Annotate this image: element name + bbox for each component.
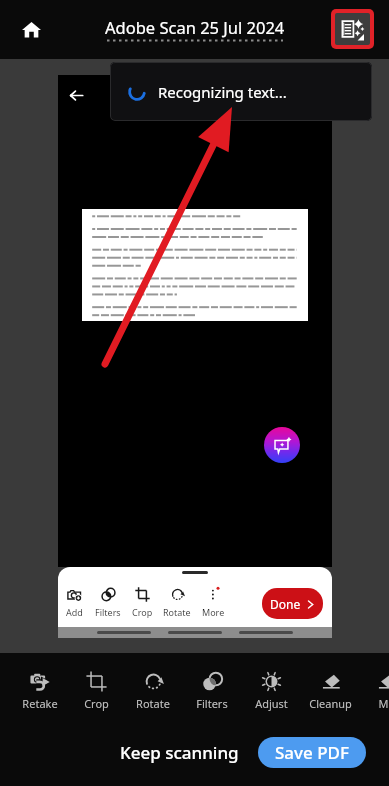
button[interactable]: Rotate bbox=[125, 666, 181, 714]
button[interactable]: Add bbox=[58, 582, 91, 622]
staticText: Cleanup bbox=[309, 696, 352, 711]
button[interactable]: Filters bbox=[91, 582, 125, 622]
staticText: Ma bbox=[378, 696, 389, 711]
button[interactable]: AI Assistant bbox=[264, 427, 300, 463]
button[interactable]: Cleanup bbox=[302, 666, 358, 714]
staticText: Crop bbox=[84, 696, 109, 711]
staticText: Rotate bbox=[163, 606, 191, 618]
button[interactable]: Keep scanning bbox=[120, 738, 239, 766]
staticText: Adjust bbox=[255, 696, 288, 711]
button[interactable]: More bbox=[196, 582, 230, 622]
staticText: More bbox=[202, 606, 225, 618]
button[interactable]: Retake bbox=[12, 666, 68, 714]
button[interactable]: Filters bbox=[184, 666, 240, 714]
staticText: Retake bbox=[22, 696, 58, 711]
button[interactable]: Crop bbox=[125, 582, 159, 622]
staticText: Adobe Scan 25 Jul 2024 bbox=[105, 16, 285, 38]
staticText: Filters bbox=[95, 606, 121, 618]
button[interactable]: Rotate bbox=[160, 582, 194, 622]
button[interactable]: Back bbox=[60, 79, 92, 111]
staticText: Crop bbox=[132, 606, 153, 618]
button[interactable]: Done bbox=[262, 588, 323, 619]
staticText: Keep scanning bbox=[120, 741, 239, 764]
button[interactable]: Adjust bbox=[243, 666, 299, 714]
button[interactable]: Ma bbox=[358, 666, 389, 714]
staticText: Filters bbox=[196, 696, 228, 711]
button[interactable]: Home bbox=[14, 12, 48, 46]
button[interactable]: Crop bbox=[68, 666, 124, 714]
button[interactable]: Scan actions bbox=[335, 13, 370, 45]
staticText: Add bbox=[66, 606, 83, 618]
staticText: Rotate bbox=[136, 696, 170, 711]
staticText: Recognizing text... bbox=[158, 82, 287, 102]
staticText: Save PDF bbox=[275, 741, 349, 764]
staticText: Done bbox=[270, 596, 301, 612]
button[interactable]: Save PDF bbox=[258, 737, 366, 768]
